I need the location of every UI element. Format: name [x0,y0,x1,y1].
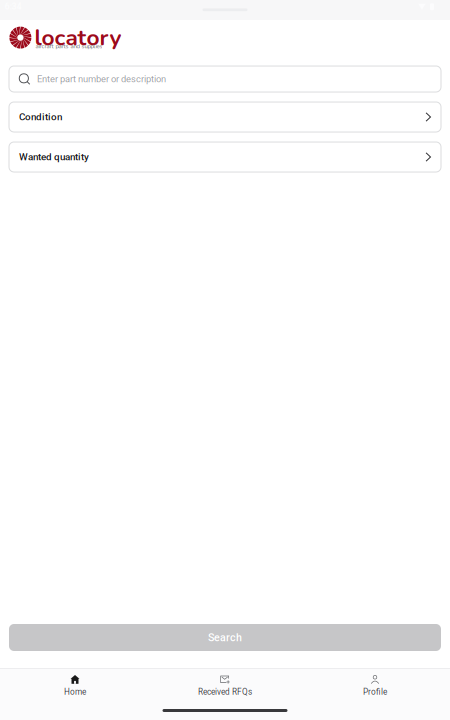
staticText: Enter part number or description [37,73,166,84]
button[interactable]: Received RFQs [150,675,300,697]
staticText: Condition [19,111,62,123]
button[interactable]: Profile [300,675,450,697]
staticText: Search [208,631,242,644]
button[interactable]: Search [9,624,441,651]
staticText: aircraft parts and supplies [35,42,102,50]
staticText: Profile [363,687,387,697]
staticText: Home [64,687,86,697]
button[interactable]: Condition [9,102,441,132]
staticText: Wanted quantity [19,151,89,163]
button[interactable]: Enter part number or description [9,66,441,92]
button[interactable]: Home [0,675,150,697]
staticText: locatory [35,22,122,53]
button[interactable]: Wanted quantity [9,142,441,172]
staticText: Received RFQs [198,687,252,697]
